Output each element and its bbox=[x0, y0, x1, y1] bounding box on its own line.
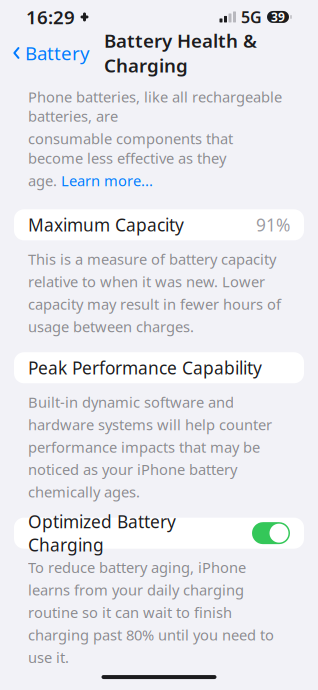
staticText: Peak Performance Capability bbox=[28, 356, 262, 379]
staticText: 91% bbox=[256, 213, 290, 236]
button[interactable]: Learn more... bbox=[61, 171, 153, 190]
button[interactable]: Peak Performance Capability bbox=[0, 352, 318, 383]
button[interactable]: Maximum Capacity bbox=[0, 209, 318, 240]
button[interactable]: Battery bbox=[12, 35, 96, 71]
staticText: Battery Health & Charging bbox=[104, 28, 257, 78]
staticText: Learn more... bbox=[61, 171, 153, 190]
staticText: To reduce battery aging, iPhone learns f… bbox=[28, 558, 274, 667]
staticText: Battery bbox=[25, 41, 90, 65]
staticText: 39 bbox=[271, 9, 285, 25]
staticText: Built-in dynamic software and hardware s… bbox=[28, 392, 272, 502]
button[interactable]: Optimized Battery Charging bbox=[0, 518, 318, 549]
staticText: This is a measure of battery capacity re… bbox=[28, 249, 281, 336]
staticText: Optimized Battery Charging bbox=[28, 510, 176, 556]
staticText: consumable components that become less e… bbox=[28, 129, 233, 168]
staticText: Phone batteries, like all rechargeable b… bbox=[28, 87, 282, 126]
staticText: Maximum Capacity bbox=[28, 213, 184, 236]
staticText: age. bbox=[28, 171, 57, 190]
staticText: 5G bbox=[241, 6, 262, 27]
staticText: 16:29 bbox=[26, 5, 75, 29]
